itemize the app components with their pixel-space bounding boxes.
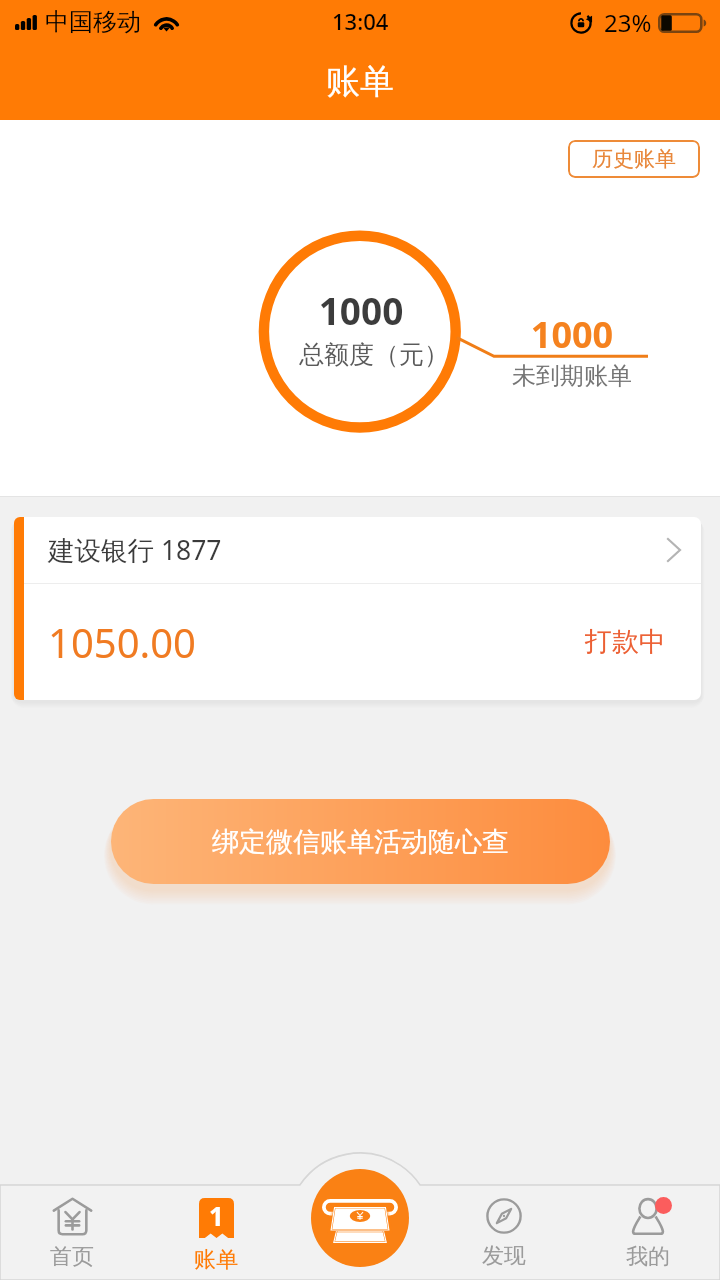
staticText: 中国移动: [45, 7, 141, 37]
staticText: 1000: [261, 285, 461, 335]
staticText: 账单: [326, 60, 394, 103]
button[interactable]: 建设银行 1877: [24, 517, 701, 583]
button[interactable]: 历史账单: [568, 140, 700, 178]
button[interactable]: 首页: [0, 1185, 144, 1280]
staticText: 1050.00: [48, 615, 196, 669]
staticText: 打款中: [585, 625, 666, 659]
staticText: 发现: [482, 1242, 526, 1270]
staticText: 账单: [194, 1246, 238, 1274]
button[interactable]: 绑定微信账单活动随心查: [111, 799, 610, 884]
button[interactable]: 我的: [576, 1185, 720, 1280]
button[interactable]: 发现: [432, 1185, 576, 1280]
staticText: 历史账单: [592, 146, 676, 172]
staticText: 1000: [472, 310, 672, 359]
staticText: 首页: [50, 1243, 94, 1271]
staticText: 建设银行 1877: [48, 532, 222, 568]
staticText: 23%: [604, 6, 652, 39]
staticText: 我的: [626, 1243, 670, 1271]
staticText: 总额度（元）: [274, 339, 474, 370]
button[interactable]: 1050.00: [24, 584, 701, 700]
staticText: 1: [209, 1198, 224, 1233]
staticText: 未到期账单: [472, 361, 672, 391]
staticText: 绑定微信账单活动随心查: [212, 825, 509, 859]
button[interactable]: 1: [144, 1185, 288, 1280]
button[interactable]: 取款: [311, 1169, 409, 1267]
staticText: 13:04: [332, 6, 389, 36]
